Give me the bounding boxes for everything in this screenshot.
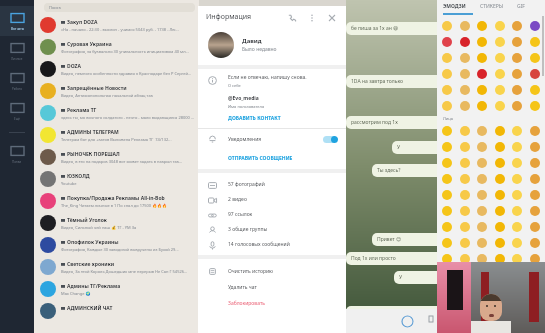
button[interactable]: Emoji bbox=[512, 21, 522, 31]
button[interactable]: Emoji bbox=[530, 142, 540, 152]
button[interactable]: Emoji bbox=[442, 270, 452, 280]
button[interactable]: Emoji bbox=[442, 142, 452, 152]
button[interactable]: Emoji bbox=[477, 21, 487, 31]
button[interactable]: Emoji bbox=[530, 174, 540, 184]
button[interactable]: Emoji bbox=[460, 21, 470, 31]
button[interactable]: Emoji bbox=[530, 270, 540, 280]
button[interactable]: Emoji bbox=[512, 37, 522, 47]
button[interactable]: Emoji bbox=[495, 206, 505, 216]
button[interactable]: ДОБАВИТЬ КОНТАКТ bbox=[228, 115, 281, 122]
button[interactable]: Emoji bbox=[477, 142, 487, 152]
button[interactable]: Emoji bbox=[477, 286, 487, 296]
button[interactable]: Emoji bbox=[477, 69, 487, 79]
button[interactable]: Личные bbox=[0, 36, 34, 66]
button[interactable]: Emoji bbox=[460, 69, 470, 79]
button[interactable]: Emoji bbox=[512, 206, 522, 216]
button[interactable]: Emoji bbox=[460, 126, 470, 136]
button[interactable]: Emoji bbox=[477, 270, 487, 280]
button[interactable]: Emoji bbox=[477, 101, 487, 111]
button[interactable]: фита. завтра начинаем лить bbox=[351, 309, 437, 316]
button[interactable]: Emoji bbox=[460, 222, 470, 232]
button[interactable]: Админы ТГ/Реклама bbox=[34, 278, 199, 300]
button[interactable]: рассмотрим под 1х bbox=[351, 119, 437, 126]
button[interactable]: Emoji bbox=[512, 53, 522, 63]
button[interactable]: Emoji bbox=[442, 206, 452, 216]
button[interactable]: Emoji bbox=[400, 314, 414, 328]
button[interactable]: Ты здесь? bbox=[377, 167, 437, 174]
button[interactable]: Emoji bbox=[460, 85, 470, 95]
button[interactable]: Emoji bbox=[442, 254, 452, 264]
button[interactable]: Emoji bbox=[495, 286, 505, 296]
button[interactable]: Запрещённые Новости bbox=[34, 80, 199, 102]
button[interactable]: Emoji bbox=[460, 37, 470, 47]
button[interactable]: Emoji bbox=[442, 158, 452, 168]
button[interactable]: Emoji bbox=[530, 318, 540, 328]
button[interactable]: Emoji bbox=[530, 53, 540, 63]
button[interactable]: Emoji bbox=[495, 69, 505, 79]
button[interactable]: Emoji bbox=[512, 222, 522, 232]
button[interactable]: Emoji bbox=[495, 85, 505, 95]
button[interactable]: Светские хроники bbox=[34, 256, 199, 278]
button[interactable]: Давид bbox=[208, 28, 346, 62]
button[interactable]: ЮЗКОЛД bbox=[34, 168, 199, 190]
button[interactable]: Emoji bbox=[477, 158, 487, 168]
button[interactable]: Emoji bbox=[512, 238, 522, 248]
button[interactable]: Emoji bbox=[495, 318, 505, 328]
button[interactable]: Emoji bbox=[530, 222, 540, 232]
button[interactable]: Emoji bbox=[512, 101, 522, 111]
button[interactable]: Emoji bbox=[530, 302, 540, 312]
button[interactable]: Удалить чат bbox=[228, 279, 346, 295]
button[interactable]: У bbox=[399, 274, 437, 281]
button[interactable]: Emoji bbox=[512, 174, 522, 184]
button[interactable]: Emoji bbox=[495, 174, 505, 184]
button[interactable]: Emoji bbox=[530, 254, 540, 264]
button[interactable]: Покупка/Продажа Рекламы All-in-Bob bbox=[34, 190, 199, 212]
button[interactable]: Emoji bbox=[460, 158, 470, 168]
button[interactable]: Emoji bbox=[460, 238, 470, 248]
button[interactable]: Уведомления bbox=[206, 129, 338, 149]
button[interactable]: Emoji bbox=[477, 238, 487, 248]
button[interactable]: 1DА на завтра только bbox=[351, 78, 437, 85]
button[interactable]: 97 ссылок bbox=[206, 207, 346, 222]
button[interactable]: Emoji bbox=[477, 206, 487, 216]
button[interactable]: Папки bbox=[0, 139, 34, 169]
button[interactable]: Emoji bbox=[460, 142, 470, 152]
button[interactable]: Emoji bbox=[442, 69, 452, 79]
button[interactable]: Emoji bbox=[495, 302, 505, 312]
button[interactable]: Emoji bbox=[530, 69, 540, 79]
button[interactable]: Emoji bbox=[495, 53, 505, 63]
button[interactable]: Если не отвечаю, напишу снова. bbox=[206, 74, 346, 88]
button[interactable]: ЭМОДЗИ bbox=[443, 3, 466, 10]
button[interactable]: Emoji bbox=[530, 126, 540, 136]
button[interactable]: Emoji bbox=[442, 85, 452, 95]
button[interactable]: Очистить историю bbox=[206, 263, 346, 279]
button[interactable]: Emoji bbox=[477, 254, 487, 264]
button[interactable]: Emoji bbox=[495, 254, 505, 264]
button[interactable]: Emoji bbox=[442, 286, 452, 296]
button[interactable]: ОТПРАВИТЬ СООБЩЕНИЕ bbox=[228, 155, 293, 162]
button[interactable]: Emoji bbox=[442, 126, 452, 136]
button[interactable]: Emoji bbox=[442, 190, 452, 200]
button[interactable]: Emoji bbox=[530, 21, 540, 31]
button[interactable]: DOZA bbox=[34, 58, 199, 80]
button[interactable]: Emoji bbox=[512, 190, 522, 200]
button[interactable]: Emoji bbox=[477, 222, 487, 232]
button[interactable]: Emoji bbox=[442, 101, 452, 111]
button[interactable]: Emoji bbox=[530, 85, 540, 95]
button[interactable]: Emoji bbox=[495, 101, 505, 111]
button[interactable]: Emoji bbox=[442, 37, 452, 47]
button[interactable]: Emoji bbox=[442, 174, 452, 184]
button[interactable]: У bbox=[397, 144, 437, 151]
button[interactable]: Emoji bbox=[512, 69, 522, 79]
button[interactable]: Тёмный Уголок bbox=[34, 212, 199, 234]
button[interactable]: Emoji bbox=[495, 142, 505, 152]
button[interactable]: Emoji bbox=[442, 238, 452, 248]
button[interactable]: Emoji bbox=[495, 238, 505, 248]
button[interactable]: Emoji bbox=[460, 302, 470, 312]
button[interactable]: Реклама ТГ bbox=[34, 102, 199, 124]
button[interactable]: Emoji bbox=[530, 101, 540, 111]
button[interactable]: Voice message bbox=[424, 314, 438, 328]
